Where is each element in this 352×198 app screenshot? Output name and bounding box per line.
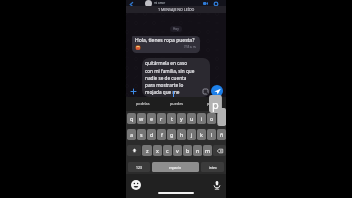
staticText: puedes xyxy=(170,101,184,106)
button[interactable]: w xyxy=(137,113,146,124)
staticText: intro xyxy=(209,165,217,170)
button[interactable]: m xyxy=(203,145,212,156)
staticText: Hola, tienes ropa puesta? xyxy=(135,37,195,44)
staticText: e xyxy=(150,115,154,122)
button[interactable]: k xyxy=(197,129,206,140)
button[interactable]: Sticker xyxy=(202,88,208,94)
button[interactable]: x xyxy=(153,145,162,156)
staticText: i xyxy=(201,115,203,122)
button[interactable]: z xyxy=(142,145,152,156)
staticText: o xyxy=(210,115,214,122)
button[interactable]: Shift xyxy=(127,145,141,156)
button[interactable]: j xyxy=(187,129,196,140)
button[interactable]: Voice input xyxy=(211,179,222,190)
button[interactable]: e xyxy=(147,113,156,124)
button[interactable]: r xyxy=(157,113,166,124)
staticText: v xyxy=(176,147,179,154)
button[interactable]: c xyxy=(163,145,172,156)
button[interactable]: q xyxy=(127,113,136,124)
button[interactable]: i xyxy=(197,113,206,124)
staticText: h xyxy=(180,131,184,138)
button[interactable]: puedes xyxy=(160,97,193,110)
staticText: 1 MENSAJE NO LEÍDO xyxy=(158,7,195,12)
button[interactable]: Call xyxy=(212,0,219,7)
staticText: s xyxy=(140,131,143,138)
staticText: espacio xyxy=(169,165,182,170)
staticText: k xyxy=(200,131,203,138)
staticText: ñ xyxy=(220,131,224,138)
staticText: quitármela en caso con mi familia, sin q… xyxy=(145,60,195,95)
button[interactable]: y xyxy=(177,113,186,124)
button[interactable]: p xyxy=(217,113,226,124)
staticText: w xyxy=(139,115,144,122)
button[interactable]: Video call xyxy=(202,0,209,7)
staticText: n xyxy=(196,147,200,154)
button[interactable]: pu xyxy=(193,97,226,110)
staticText: l xyxy=(211,131,213,138)
staticText: r xyxy=(160,115,163,122)
staticText: x xyxy=(156,147,159,154)
staticText: z xyxy=(146,147,149,154)
staticText: pu xyxy=(207,101,212,106)
button[interactable]: Back xyxy=(127,0,135,8)
button[interactable]: s xyxy=(137,129,146,140)
staticText: t xyxy=(171,115,173,122)
staticText: d xyxy=(150,131,154,138)
button[interactable]: Send xyxy=(211,85,223,97)
button[interactable]: u xyxy=(187,113,196,124)
button[interactable]: quitármela en caso con mi familia, sin q… xyxy=(142,58,210,97)
button[interactable]: espacio xyxy=(152,162,199,172)
button[interactable]: Hola, tienes ropa puesta? xyxy=(132,36,200,53)
button[interactable]: Emoji xyxy=(130,179,141,190)
staticText: u xyxy=(190,115,194,122)
staticText: mi amor xyxy=(154,1,166,5)
staticText: c xyxy=(166,147,169,154)
button[interactable]: intro xyxy=(201,162,224,172)
button[interactable]: g xyxy=(167,129,176,140)
button[interactable]: o xyxy=(207,113,216,124)
button[interactable]: d xyxy=(147,129,156,140)
button[interactable]: podrías xyxy=(126,97,160,110)
button[interactable]: v xyxy=(173,145,182,156)
button[interactable]: 123 xyxy=(128,162,150,172)
button[interactable]: ñ xyxy=(217,129,226,140)
staticText: g xyxy=(170,131,174,138)
staticText: podrías xyxy=(136,101,150,106)
button[interactable]: h xyxy=(177,129,186,140)
staticText: f xyxy=(161,131,163,138)
staticText: y xyxy=(180,115,183,122)
button[interactable]: n xyxy=(193,145,202,156)
button[interactable]: Backspace xyxy=(213,145,226,156)
button[interactable]: f xyxy=(157,129,166,140)
staticText: a xyxy=(130,131,134,138)
button[interactable]: Attach xyxy=(129,87,137,95)
button[interactable]: l xyxy=(207,129,216,140)
staticText: j xyxy=(191,131,193,138)
button[interactable]: a xyxy=(127,129,136,140)
staticText: Hoy xyxy=(173,27,179,31)
staticText: m xyxy=(205,147,211,154)
staticText: 123 xyxy=(136,165,142,170)
staticText: p xyxy=(212,97,219,112)
staticText: 7:55 a. m. xyxy=(184,45,197,49)
button[interactable]: b xyxy=(183,145,192,156)
button[interactable]: t xyxy=(167,113,176,124)
staticText: b xyxy=(186,147,190,154)
staticText: q xyxy=(130,115,134,122)
